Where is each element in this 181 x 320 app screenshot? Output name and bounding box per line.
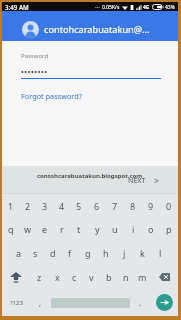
staticText: l bbox=[159, 247, 162, 259]
button[interactable]: r bbox=[53, 217, 70, 241]
staticText: n bbox=[123, 271, 129, 283]
button[interactable]: 8 bbox=[124, 194, 142, 217]
button[interactable]: 7 bbox=[106, 194, 124, 217]
staticText: h bbox=[103, 247, 109, 259]
staticText: a bbox=[16, 247, 22, 259]
staticText: r bbox=[60, 223, 64, 235]
staticText: 7 bbox=[112, 200, 118, 212]
staticText: i bbox=[132, 223, 135, 235]
button[interactable]: Shift bbox=[2, 265, 30, 289]
staticText: m bbox=[138, 271, 147, 283]
button[interactable]: 0 bbox=[160, 194, 178, 217]
button[interactable]: p bbox=[160, 217, 178, 241]
button[interactable]: 6 bbox=[88, 194, 106, 217]
staticText: ··· bbox=[95, 3, 100, 11]
staticText: NEXT bbox=[128, 176, 146, 186]
staticText: f bbox=[68, 247, 72, 259]
button[interactable]: d bbox=[44, 241, 61, 265]
button[interactable]: g bbox=[79, 241, 97, 265]
button[interactable]: o bbox=[142, 217, 160, 241]
button[interactable]: j bbox=[115, 241, 133, 265]
button[interactable]: 4 bbox=[53, 194, 70, 217]
staticText: v bbox=[89, 271, 94, 283]
staticText: 8 bbox=[130, 200, 136, 212]
staticText: 3 bbox=[42, 200, 48, 212]
button[interactable]: t bbox=[70, 217, 88, 241]
staticText: 4 bbox=[59, 200, 65, 212]
staticText: e bbox=[42, 223, 48, 235]
button[interactable]: k bbox=[133, 241, 151, 265]
button[interactable]: 2 bbox=[19, 194, 36, 217]
staticText: p bbox=[166, 223, 172, 235]
staticText: x bbox=[55, 271, 60, 283]
staticText: 0.05K/s bbox=[102, 4, 120, 11]
button[interactable]: s bbox=[27, 241, 44, 265]
staticText: w bbox=[24, 223, 32, 235]
button[interactable]: Backspace bbox=[151, 265, 178, 289]
staticText: 4G bbox=[143, 4, 150, 11]
staticText: > bbox=[154, 175, 159, 187]
button[interactable]: Enter bbox=[150, 289, 178, 316]
button[interactable]: v bbox=[83, 265, 100, 289]
button[interactable]: u bbox=[106, 217, 124, 241]
button[interactable]: b bbox=[100, 265, 117, 289]
button[interactable]: e bbox=[36, 217, 53, 241]
staticText: z bbox=[37, 271, 42, 283]
staticText: q bbox=[8, 223, 14, 235]
button[interactable]: 9 bbox=[142, 194, 160, 217]
button[interactable]: 5 bbox=[70, 194, 88, 217]
staticText: j bbox=[123, 247, 126, 259]
staticText: contohcarabuatakun.blogspot.com bbox=[37, 172, 143, 180]
button[interactable]: f bbox=[61, 241, 79, 265]
staticText: contohcarabuatakun@... bbox=[44, 23, 150, 36]
button[interactable]: ?123 bbox=[2, 289, 30, 316]
staticText: . bbox=[139, 297, 142, 308]
staticText: o bbox=[148, 223, 154, 235]
button[interactable]: 3 bbox=[36, 194, 53, 217]
button[interactable]: 1 bbox=[2, 194, 19, 217]
button[interactable]: l bbox=[151, 241, 169, 265]
staticText: s bbox=[33, 247, 38, 259]
staticText: g bbox=[85, 247, 91, 259]
staticText: 5 bbox=[76, 200, 82, 212]
button[interactable]: n bbox=[117, 265, 134, 289]
button[interactable]: Forgot password? bbox=[21, 91, 82, 101]
staticText: , bbox=[39, 297, 42, 308]
staticText: b bbox=[106, 271, 112, 283]
staticText: u bbox=[112, 223, 118, 235]
button[interactable]: q bbox=[2, 217, 19, 241]
button[interactable]: z bbox=[30, 265, 48, 289]
button[interactable]: w bbox=[19, 217, 36, 241]
staticText: 0 bbox=[166, 200, 172, 212]
staticText: k bbox=[140, 247, 145, 259]
staticText: y bbox=[95, 223, 100, 235]
staticText: t bbox=[77, 223, 81, 235]
button[interactable]: c bbox=[66, 265, 83, 289]
button[interactable]: m bbox=[134, 265, 151, 289]
staticText: d bbox=[50, 247, 56, 259]
button[interactable]: . bbox=[130, 289, 150, 316]
button[interactable]: y bbox=[88, 217, 106, 241]
staticText: 2 bbox=[25, 200, 31, 212]
staticText: ?123 bbox=[10, 299, 23, 307]
staticText: 3:49 AM bbox=[5, 3, 29, 11]
staticText: 43% bbox=[165, 4, 175, 11]
staticText: Password bbox=[21, 52, 49, 60]
button[interactable]: i bbox=[124, 217, 142, 241]
staticText: 9 bbox=[148, 200, 154, 212]
button[interactable]: , bbox=[30, 289, 51, 316]
button[interactable]: h bbox=[97, 241, 115, 265]
staticText: 6 bbox=[94, 200, 100, 212]
staticText: c bbox=[72, 271, 77, 283]
button[interactable]: a bbox=[10, 241, 27, 265]
button[interactable]: x bbox=[48, 265, 66, 289]
staticText: 1 bbox=[8, 200, 14, 212]
